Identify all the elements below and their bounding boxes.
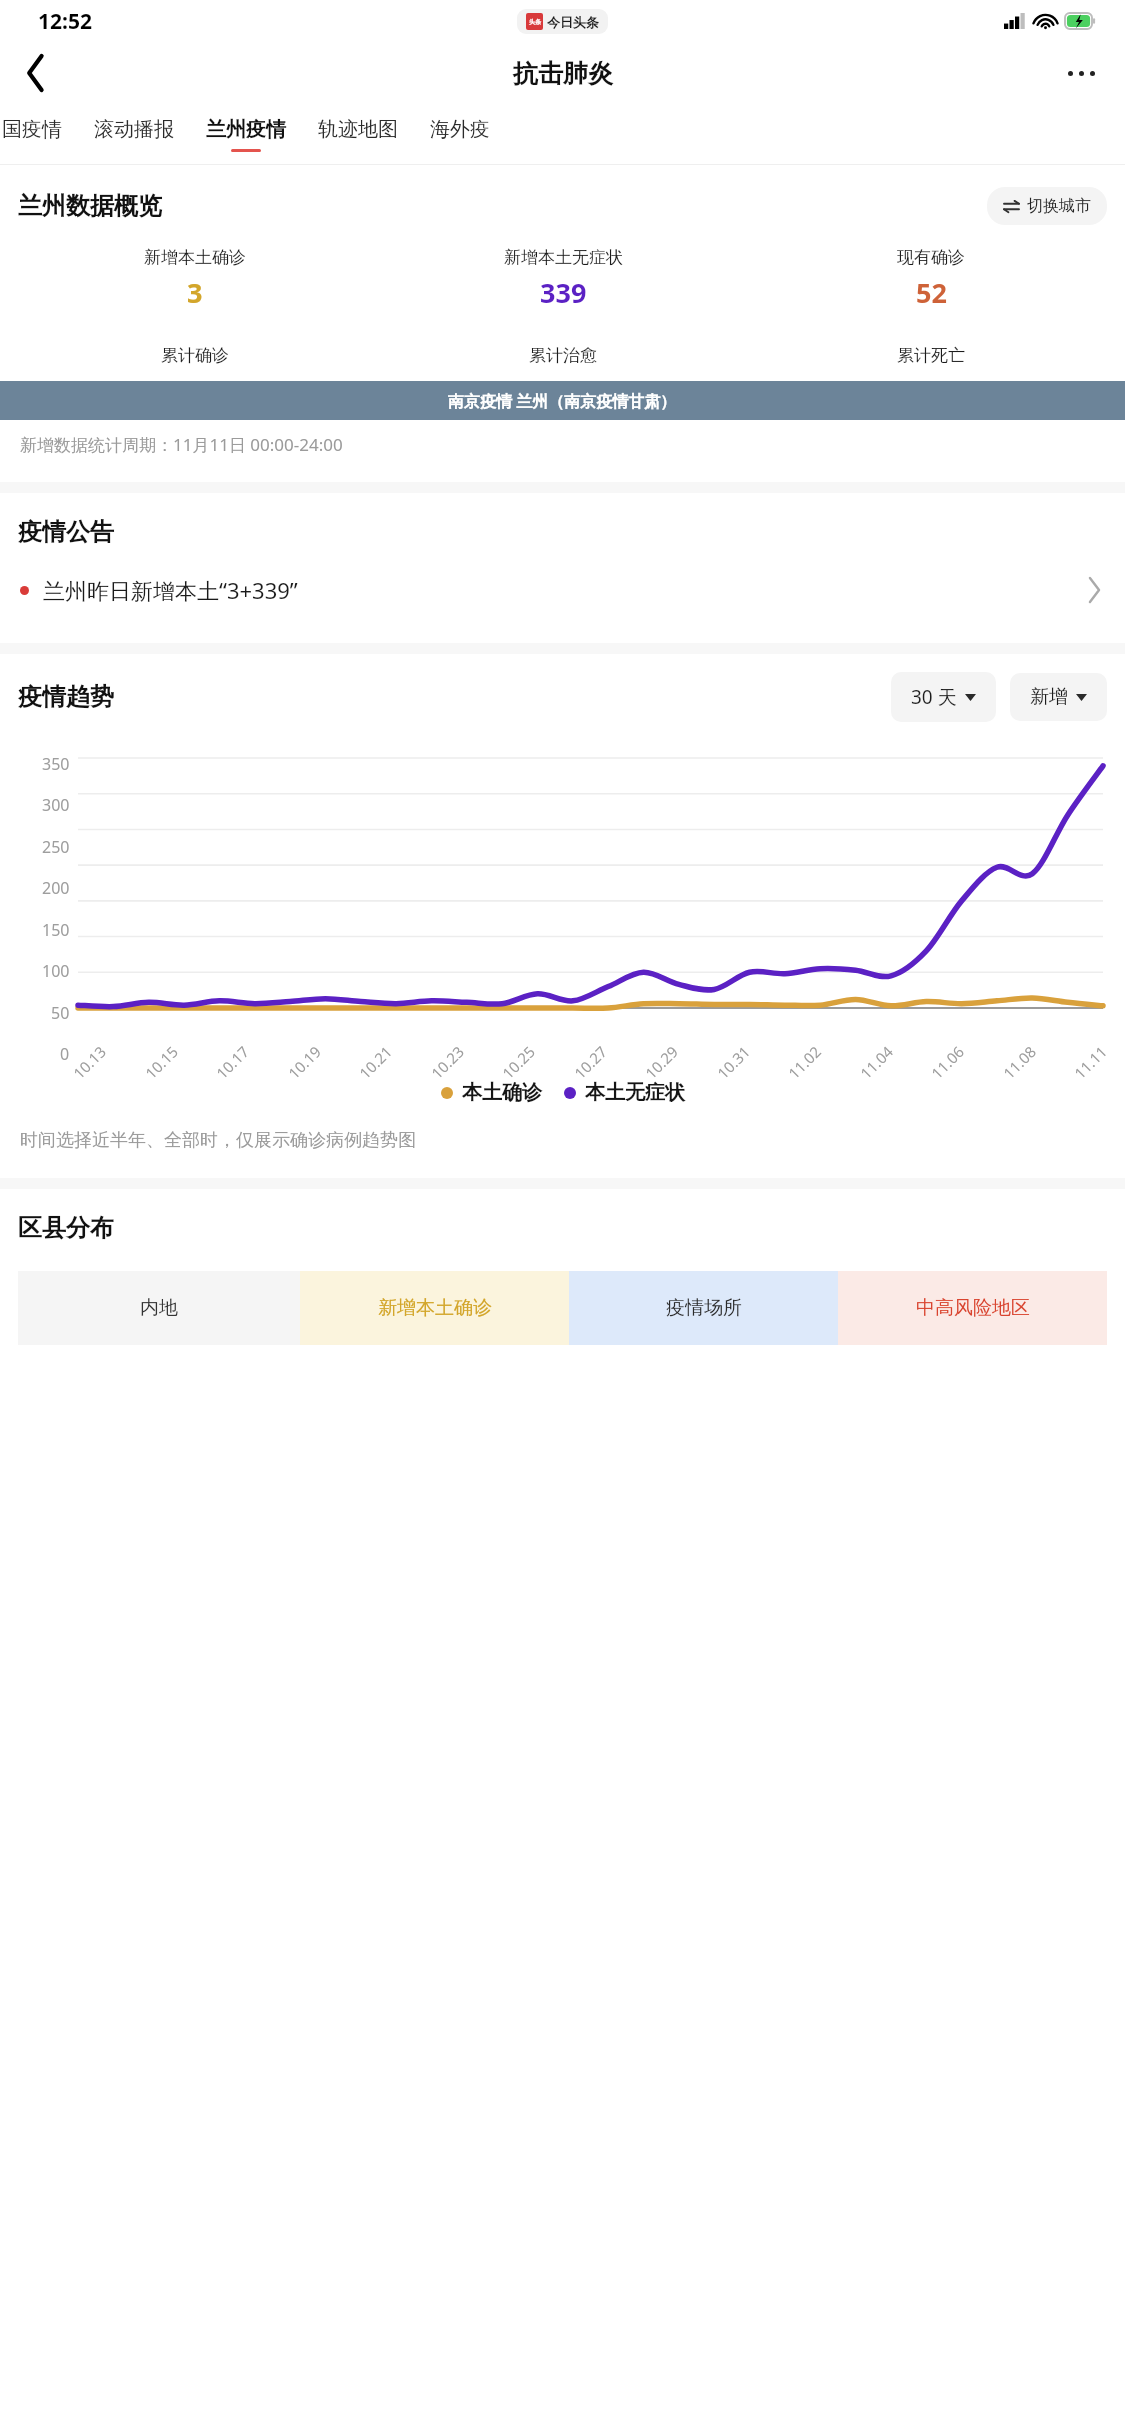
- staticText: 10.23: [427, 1041, 468, 1083]
- staticText: 时间选择近半年、全部时，仅展示确诊病例趋势图: [20, 1129, 416, 1152]
- button[interactable]: 切换城市: [987, 187, 1107, 225]
- staticText: 11.11: [1070, 1041, 1111, 1083]
- staticText: 新增本土无症状: [504, 247, 623, 268]
- staticText: 10.13: [69, 1041, 110, 1083]
- button[interactable]: 新增: [1010, 673, 1107, 721]
- staticText: 南京疫情 兰州（南京疫情甘肃）: [448, 390, 677, 412]
- button[interactable]: 兰州疫情: [206, 104, 286, 164]
- staticText: 937: [171, 372, 218, 409]
- staticText: 累计确诊: [161, 345, 229, 366]
- staticText: 疫情场所: [666, 1296, 742, 1320]
- staticText: 30 天: [911, 684, 957, 710]
- staticText: 10.17: [212, 1041, 253, 1083]
- staticText: 新增本土确诊: [144, 247, 246, 268]
- staticText: 头条: [529, 18, 541, 26]
- button[interactable]: 海外疫: [430, 104, 490, 164]
- staticText: 50: [51, 1002, 70, 1024]
- staticText: 200: [42, 877, 70, 899]
- staticText: 兰州数据概览: [18, 191, 162, 221]
- staticText: 中高风险地区: [916, 1296, 1030, 1320]
- staticText: 内地: [140, 1296, 178, 1320]
- staticText: 抗击肺炎: [513, 58, 613, 89]
- button[interactable]: More options: [1037, 42, 1125, 104]
- button[interactable]: 30 天: [891, 672, 996, 722]
- staticText: 新增: [1030, 685, 1068, 709]
- staticText: 10.25: [498, 1041, 539, 1083]
- staticText: 现有确诊: [897, 247, 965, 268]
- staticText: 疫情公告: [18, 517, 114, 547]
- staticText: 11.06: [927, 1041, 968, 1083]
- staticText: 2: [923, 372, 939, 409]
- staticText: 兰州昨日新增本土“3+339”: [43, 575, 298, 605]
- staticText: 300: [42, 794, 70, 816]
- staticText: 滚动播报: [94, 117, 174, 142]
- button[interactable]: 兰州昨日新增本土“3+339”: [0, 571, 1125, 609]
- button[interactable]: 国疫情: [2, 104, 62, 164]
- staticText: 3: [187, 274, 203, 311]
- staticText: 海外疫: [430, 117, 490, 142]
- staticText: 11.08: [999, 1041, 1040, 1083]
- staticText: 52: [916, 274, 947, 311]
- button[interactable]: 南京疫情 兰州（南京疫情甘肃）: [0, 381, 1125, 420]
- staticText: 0: [60, 1043, 70, 1065]
- staticText: 10.19: [284, 1041, 325, 1083]
- staticText: 今日头条: [547, 14, 599, 30]
- staticText: 10.31: [713, 1041, 754, 1083]
- staticText: 轨迹地图: [318, 117, 398, 142]
- button[interactable]: 疫情场所: [569, 1271, 838, 1345]
- button[interactable]: 新增本土确诊: [300, 1271, 569, 1345]
- staticText: 累计治愈: [529, 345, 597, 366]
- staticText: 339: [540, 274, 587, 311]
- staticText: 883: [540, 372, 587, 409]
- staticText: 100: [42, 960, 70, 982]
- staticText: 疫情趋势: [18, 682, 114, 712]
- button[interactable]: Back: [0, 42, 72, 104]
- staticText: 切换城市: [1027, 196, 1091, 216]
- staticText: 兰州疫情: [206, 117, 286, 142]
- staticText: 国疫情: [2, 117, 62, 142]
- staticText: 350: [42, 753, 70, 775]
- button[interactable]: 滚动播报: [94, 104, 174, 164]
- staticText: 区县分布: [18, 1213, 114, 1243]
- staticText: 10.27: [570, 1041, 611, 1083]
- button[interactable]: 轨迹地图: [318, 104, 398, 164]
- staticText: 累计死亡: [897, 345, 965, 366]
- staticText: 11.02: [784, 1041, 825, 1083]
- staticText: 10.21: [355, 1041, 396, 1083]
- button[interactable]: 内地: [18, 1271, 300, 1345]
- staticText: 250: [42, 836, 70, 858]
- button[interactable]: 中高风险地区: [838, 1271, 1107, 1345]
- staticText: 11.04: [856, 1041, 897, 1083]
- staticText: 10.29: [641, 1041, 682, 1083]
- staticText: 本土确诊: [462, 1080, 542, 1105]
- staticText: 新增数据统计周期：11月11日 00:00-24:00: [20, 433, 343, 456]
- staticText: 10.15: [141, 1041, 182, 1083]
- staticText: 150: [42, 919, 70, 941]
- staticText: 12:52: [38, 7, 92, 36]
- staticText: 本土无症状: [585, 1080, 685, 1105]
- staticText: 新增本土确诊: [378, 1296, 492, 1320]
